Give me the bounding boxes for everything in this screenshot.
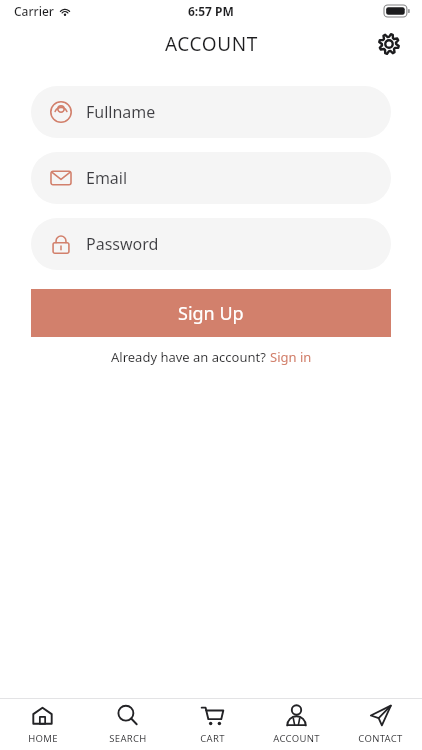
- staticText: Sign Up: [178, 301, 244, 326]
- staticText: Already have an account?: [111, 348, 270, 366]
- staticText: ACCOUNT: [273, 732, 320, 745]
- staticText: CONTACT: [358, 732, 403, 745]
- button[interactable]: Email: [31, 152, 391, 204]
- button[interactable]: Sign Up: [31, 289, 391, 337]
- staticText: HOME: [28, 732, 58, 745]
- button[interactable]: ACCOUNT: [254, 699, 338, 750]
- staticText: 6:57 PM: [188, 3, 234, 19]
- button[interactable]: CONTACT: [338, 699, 422, 750]
- staticText: Email: [86, 167, 128, 189]
- button[interactable]: Fullname: [31, 86, 391, 138]
- staticText: Sign in: [270, 348, 312, 366]
- button[interactable]: Sign in: [270, 348, 312, 366]
- staticText: Fullname: [86, 101, 156, 123]
- button[interactable]: Settings: [374, 29, 404, 59]
- staticText: SEARCH: [109, 732, 147, 745]
- staticText: ACCOUNT: [165, 31, 258, 57]
- staticText: Carrier: [14, 3, 54, 19]
- button[interactable]: SEARCH: [85, 699, 170, 750]
- staticText: CART: [200, 732, 225, 745]
- button[interactable]: HOME: [0, 699, 85, 750]
- button[interactable]: CART: [170, 699, 254, 750]
- button[interactable]: Password: [31, 218, 391, 270]
- staticText: Password: [86, 233, 159, 255]
